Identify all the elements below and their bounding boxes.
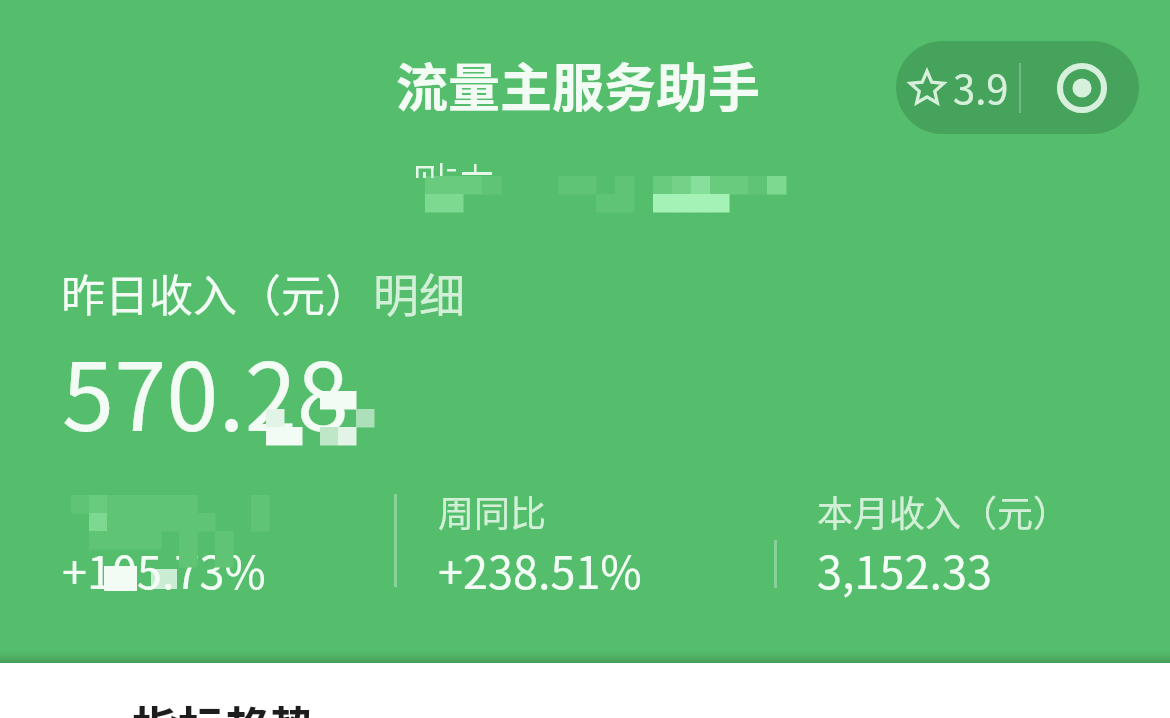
staticText: 流量主服务助手 — [396, 47, 761, 122]
staticText: 3.9 — [953, 58, 1009, 116]
staticText: 570.28 — [62, 322, 349, 458]
staticText: 本月收入（元） — [817, 485, 1070, 537]
staticText: 指标趋势 — [132, 692, 316, 718]
staticText: 3,152.33 — [817, 537, 992, 602]
staticText: 周同比 — [438, 485, 547, 537]
button[interactable]: 本月收入（元） — [817, 485, 1147, 595]
staticText: +105.73% — [62, 537, 266, 602]
button[interactable]: More — [1024, 41, 1139, 134]
button[interactable]: 3.9 — [896, 41, 1019, 134]
staticText: 昨日收入（元） — [61, 261, 369, 325]
button[interactable]: +105.73% — [62, 485, 392, 595]
button[interactable]: 明细 — [373, 259, 465, 326]
staticText: +238.51% — [438, 537, 642, 602]
button[interactable]: 周同比 — [438, 485, 768, 595]
